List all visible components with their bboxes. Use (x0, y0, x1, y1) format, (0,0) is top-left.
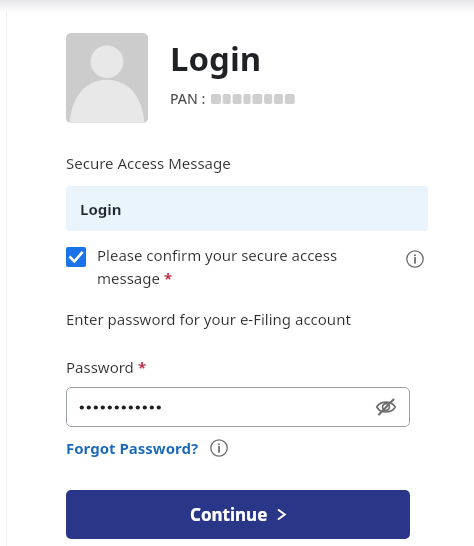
staticText: Enter password for your e-Filing account (66, 309, 351, 329)
staticText: Forgot Password? (66, 438, 199, 458)
staticText: * (164, 268, 173, 288)
button[interactable]: Show password (66, 387, 410, 427)
staticText: Secure Access Message (66, 153, 231, 173)
staticText: Password (66, 357, 138, 377)
button[interactable]: Login (66, 186, 428, 231)
button[interactable]: Show password (374, 395, 398, 419)
button[interactable]: More information (207, 436, 231, 460)
button[interactable]: Please confirm your secure access (66, 245, 402, 288)
button[interactable]: Forgot Password? (66, 438, 199, 458)
button[interactable]: Continue (66, 490, 410, 539)
staticText: Login (170, 36, 262, 81)
staticText: Please confirm your secure access (97, 245, 338, 265)
staticText: Continue (190, 503, 268, 526)
staticText: * (138, 357, 147, 377)
staticText: message (97, 268, 164, 288)
staticText: Login (80, 199, 122, 219)
button[interactable]: More information (402, 246, 428, 272)
staticText: PAN : (170, 89, 206, 108)
